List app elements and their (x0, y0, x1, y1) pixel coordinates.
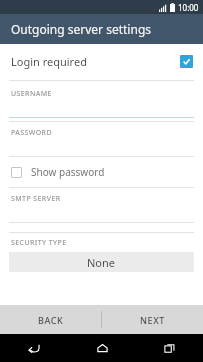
staticText: NEXT (140, 314, 165, 326)
button[interactable]: None (9, 252, 194, 272)
staticText: Outgoing server settings (11, 21, 152, 37)
staticText: SECURITY TYPE (11, 238, 67, 248)
staticText: 10:00 (178, 2, 199, 13)
staticText: Show password (31, 165, 105, 179)
staticText: Login required (11, 54, 87, 69)
staticText: SMTP SERVER (11, 194, 61, 204)
button[interactable]: Login required (0, 44, 203, 78)
button[interactable]: BACK (0, 305, 101, 334)
button[interactable]: Show password checkbox, unchecked (0, 157, 203, 187)
button[interactable]: Home (85, 334, 119, 362)
other: Login required checkbox, checked (180, 55, 193, 68)
other: Show password checkbox, unchecked (11, 167, 22, 178)
button[interactable]: Back (17, 334, 51, 362)
staticText: BACK (38, 314, 64, 326)
button[interactable]: NEXT (102, 305, 203, 334)
button[interactable]: Recent apps (152, 334, 186, 362)
staticText: PASSWORD (11, 128, 52, 138)
staticText: USERNAME (11, 89, 52, 99)
staticText: None (87, 255, 116, 270)
